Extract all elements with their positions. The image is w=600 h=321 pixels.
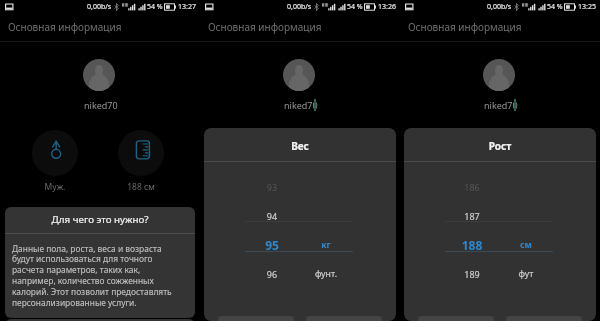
staticText: 187 — [442, 210, 502, 222]
staticText: фут — [496, 268, 556, 280]
staticText: см — [496, 239, 556, 251]
staticText: фунт. — [296, 268, 356, 280]
staticText: 186 — [442, 181, 502, 193]
staticText: 189 — [442, 268, 502, 280]
staticText: Основная информация — [408, 20, 522, 34]
staticText: Для чего это нужно? — [5, 213, 195, 226]
staticText: niked70 — [284, 99, 318, 111]
button[interactable]: Муж. — [32, 130, 78, 176]
staticText: 94 — [242, 210, 302, 222]
staticText: 54 % — [347, 2, 363, 12]
staticText: Муж. — [25, 181, 85, 193]
staticText: 95 — [242, 237, 302, 253]
button[interactable]: 188 см — [118, 130, 164, 176]
staticText: Основная информация — [208, 20, 322, 34]
staticText: кг — [296, 239, 356, 251]
staticText: 188 — [442, 237, 502, 253]
staticText: 54 % — [147, 2, 163, 12]
staticText: 96 — [242, 268, 302, 280]
staticText: Рост — [404, 139, 596, 153]
staticText: niked70 — [484, 99, 518, 111]
staticText: 13:26 — [378, 2, 396, 12]
staticText: Данные пола, роста, веса и возраста буду… — [12, 243, 174, 309]
staticText: niked70 — [84, 99, 118, 111]
staticText: 13:25 — [578, 2, 596, 12]
staticText: 188 см — [111, 181, 171, 193]
staticText: 93 — [242, 181, 302, 193]
staticText: Основная информация — [8, 20, 122, 34]
staticText: 0,00b/s — [87, 2, 112, 12]
staticText: Вес — [204, 139, 396, 153]
staticText: 13:27 — [178, 2, 196, 12]
staticText: 0,00b/s — [487, 2, 512, 12]
staticText: 0,00b/s — [287, 2, 312, 12]
staticText: 54 % — [547, 2, 563, 12]
